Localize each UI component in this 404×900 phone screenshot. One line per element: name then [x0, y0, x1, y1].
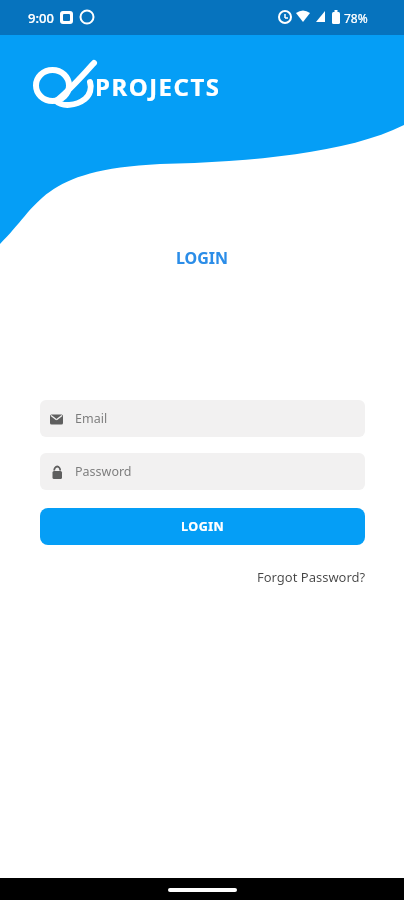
button[interactable]: Password: [40, 453, 365, 490]
button[interactable]: Email: [40, 400, 365, 437]
staticText: Email: [75, 410, 108, 427]
staticText: Forgot Password?: [257, 568, 366, 586]
staticText: 9:00: [28, 9, 54, 27]
staticText: PROJECTS: [95, 70, 221, 103]
button[interactable]: LOGIN: [40, 508, 365, 545]
staticText: 78%: [344, 10, 368, 26]
staticText: LOGIN: [181, 518, 225, 535]
button[interactable]: Forgot Password?: [257, 568, 366, 586]
staticText: LOGIN: [176, 247, 229, 269]
staticText: Password: [75, 463, 132, 480]
